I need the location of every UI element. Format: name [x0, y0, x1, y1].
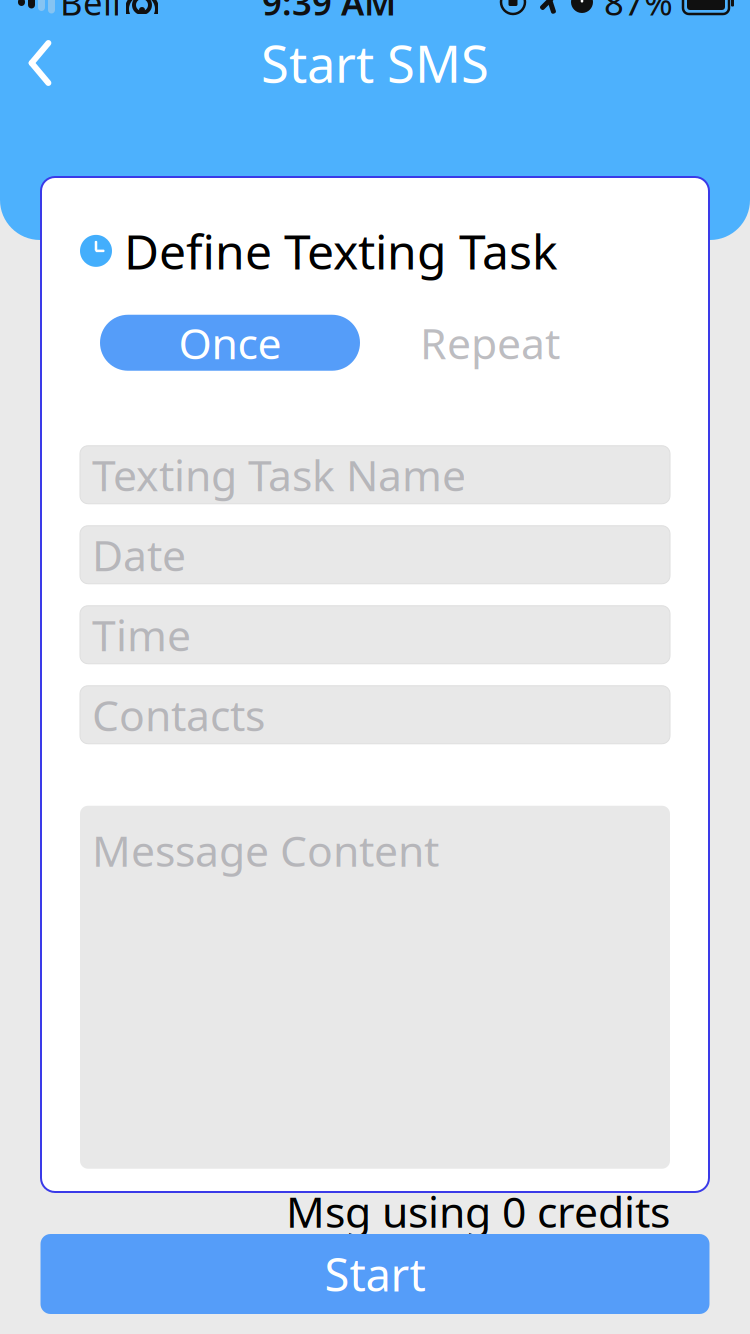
- staticText: Repeat: [420, 314, 560, 371]
- button[interactable]: Back: [0, 28, 80, 98]
- staticText: Texting Task Name: [92, 446, 466, 503]
- staticText: Once: [178, 314, 281, 371]
- button[interactable]: Texting Task Name: [80, 446, 670, 504]
- staticText: Define Texting Task: [124, 219, 558, 283]
- staticText: 87%: [604, 0, 673, 25]
- staticText: Message Content: [92, 822, 439, 878]
- staticText: Contacts: [92, 686, 265, 743]
- button[interactable]: Date: [80, 526, 670, 584]
- staticText: Date: [92, 526, 186, 583]
- button[interactable]: Repeat: [360, 315, 620, 371]
- staticText: Bell: [60, 0, 121, 25]
- staticText: Time: [92, 606, 191, 663]
- staticText: Start: [324, 1244, 425, 1304]
- button[interactable]: Once: [100, 315, 360, 371]
- staticText: 9:39 AM: [262, 0, 396, 25]
- button[interactable]: Time: [80, 606, 670, 664]
- button[interactable]: Message Content: [80, 806, 670, 1169]
- staticText: Msg using 0 credits: [286, 1183, 670, 1239]
- button[interactable]: Contacts: [80, 686, 670, 744]
- button[interactable]: Start: [40, 1234, 709, 1314]
- staticText: Start SMS: [261, 29, 489, 97]
